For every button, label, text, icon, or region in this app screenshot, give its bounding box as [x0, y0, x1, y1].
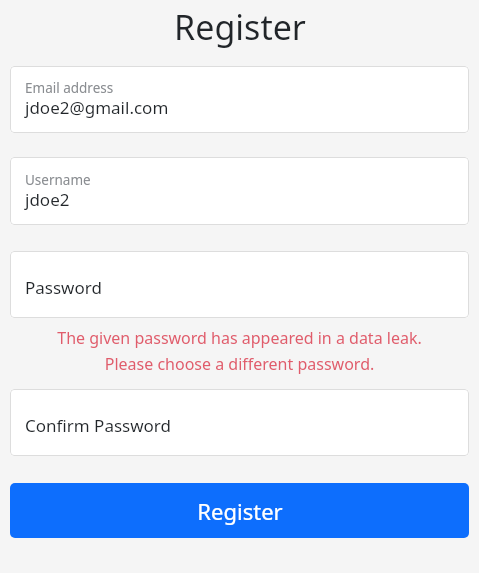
staticText: Username: [25, 171, 91, 189]
staticText: Password: [25, 276, 102, 299]
button[interactable]: Email address: [10, 66, 469, 133]
button[interactable]: Password: [10, 251, 469, 318]
staticText: jdoe2: [25, 188, 70, 211]
button[interactable]: Username: [10, 157, 469, 225]
staticText: jdoe2@gmail.com: [25, 96, 169, 119]
staticText: The given password has appeared in a dat…: [10, 327, 469, 375]
button[interactable]: Confirm Password: [10, 389, 469, 456]
staticText: Email address: [25, 79, 114, 97]
staticText: Register: [174, 4, 306, 50]
button[interactable]: Register: [10, 483, 469, 538]
staticText: Register: [197, 496, 283, 526]
staticText: Confirm Password: [25, 414, 171, 437]
